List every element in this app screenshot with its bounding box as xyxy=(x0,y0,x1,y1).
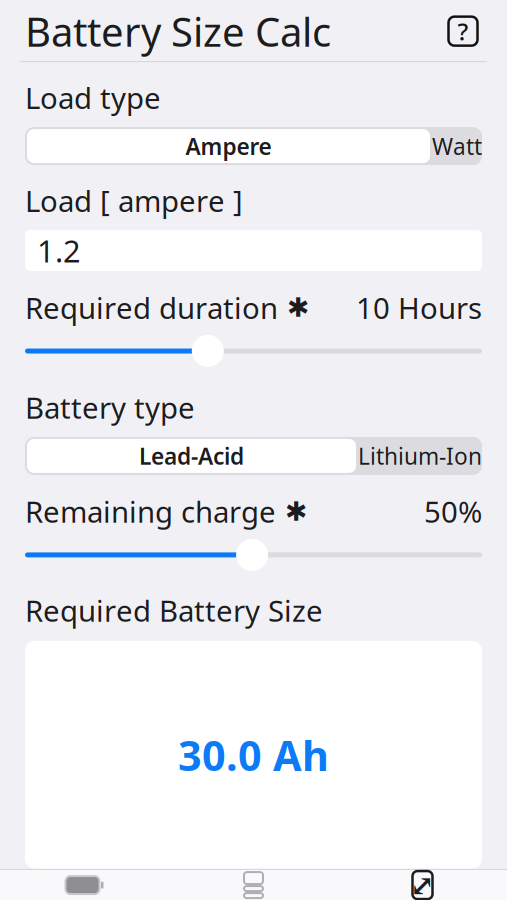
staticText: 30.0 Ah xyxy=(178,727,329,782)
staticText: Ampere xyxy=(185,131,271,161)
staticText: ✱ xyxy=(276,496,307,527)
staticText: 50% xyxy=(424,492,482,531)
staticText: Load type xyxy=(25,78,161,117)
staticText: Required Battery Size xyxy=(25,591,323,630)
staticText: Load [ ampere ] xyxy=(25,181,243,220)
button[interactable]: ⤢ xyxy=(338,870,507,900)
staticText: 1.2 xyxy=(37,230,81,271)
button[interactable]: Ampere xyxy=(25,127,482,165)
staticText: Lithium-Ion xyxy=(358,441,482,471)
button[interactable]: Required duration xyxy=(25,334,482,368)
staticText: Remaining charge xyxy=(25,492,276,531)
button[interactable]: Battery Capacity xyxy=(169,870,338,900)
staticText: Battery type xyxy=(25,388,195,427)
staticText: Watt xyxy=(432,131,482,161)
staticText: ✱ xyxy=(278,292,309,323)
button[interactable]: Help xyxy=(444,12,482,50)
staticText: Battery Size Calc xyxy=(25,5,331,58)
staticText: Required duration xyxy=(25,288,278,327)
button[interactable]: Remaining charge xyxy=(25,538,482,572)
staticText: 10 Hours xyxy=(356,288,482,327)
staticText: Lead-Acid xyxy=(139,441,244,471)
button[interactable]: Battery Life xyxy=(0,870,169,900)
staticText: ? xyxy=(457,15,468,47)
button[interactable]: Lead-Acid xyxy=(25,437,482,475)
staticText: ⤢ xyxy=(410,868,435,900)
